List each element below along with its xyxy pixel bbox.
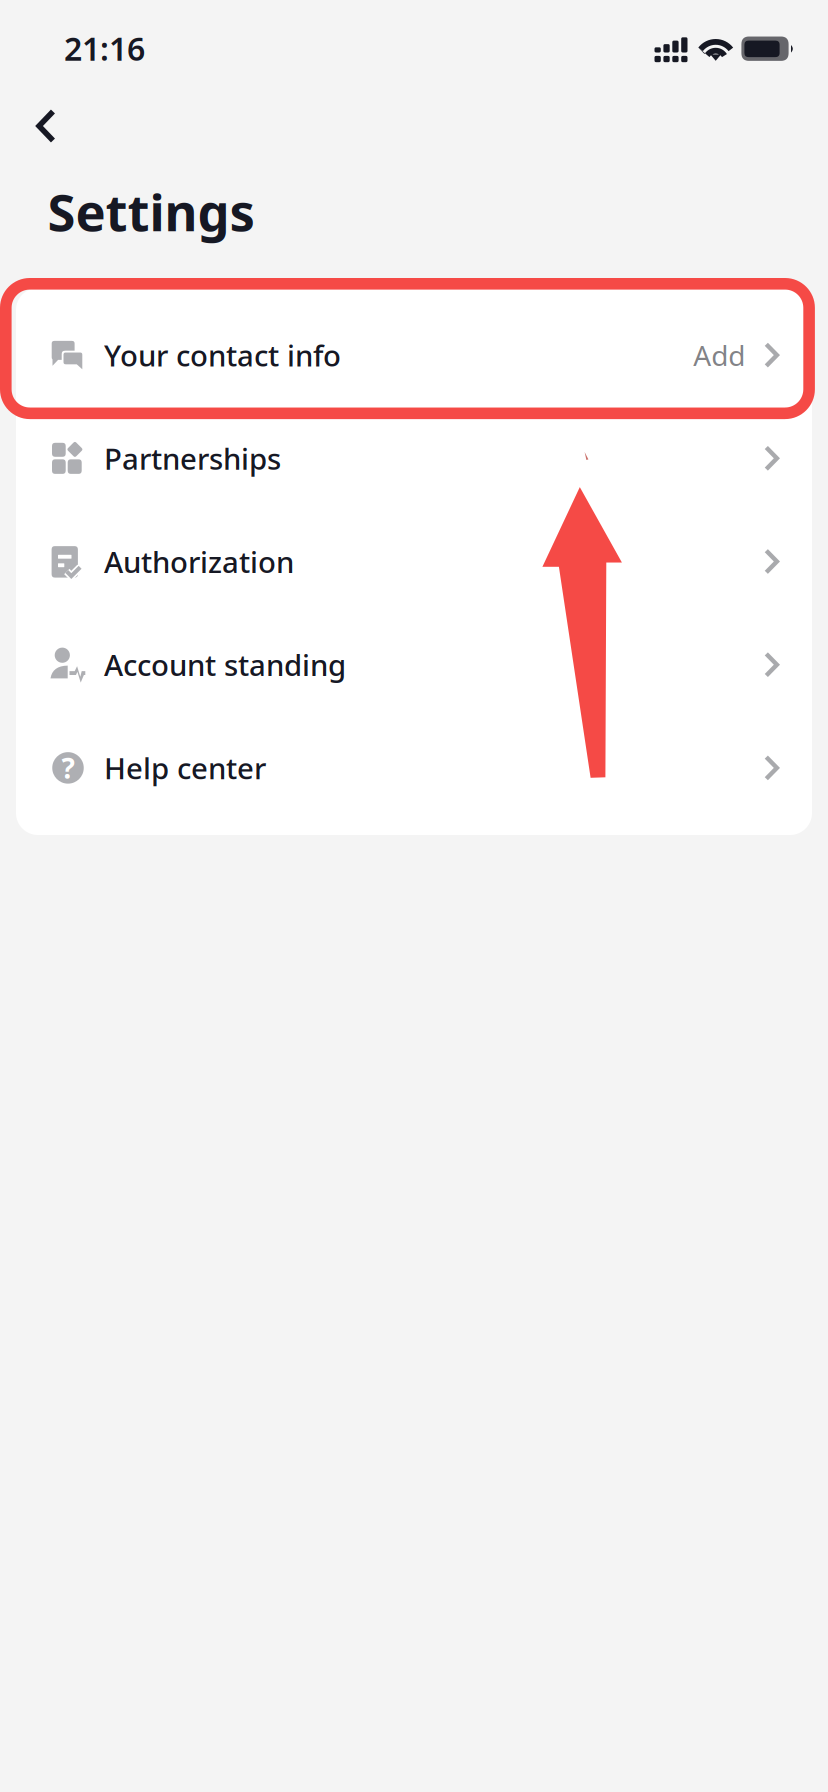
staticText: Settings (47, 178, 254, 245)
staticText: Partnerships (104, 439, 281, 478)
staticText: Your contact info (104, 336, 341, 375)
button[interactable]: Back (13, 94, 79, 158)
staticText: Authorization (104, 542, 294, 581)
button[interactable]: Partnerships (16, 407, 812, 510)
button[interactable]: ? (16, 716, 812, 819)
button[interactable]: Your contact info (16, 303, 812, 407)
button[interactable]: Authorization (16, 510, 812, 613)
staticText: ? (61, 749, 74, 786)
staticText: 21:16 (64, 27, 145, 69)
staticText: Account standing (104, 645, 346, 684)
staticText: Add (693, 336, 745, 374)
button[interactable]: Account standing (16, 613, 812, 716)
staticText: Help center (104, 748, 266, 787)
